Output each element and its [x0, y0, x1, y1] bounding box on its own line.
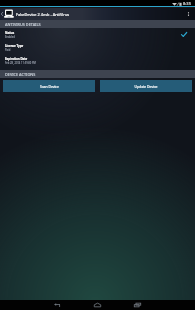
button[interactable]: More options: [184, 8, 192, 20]
button[interactable]: Expiration Date: [0, 54, 195, 67]
staticText: Status: [5, 31, 15, 35]
button[interactable]: Navigate up: [0, 8, 4, 20]
button[interactable]: License Type: [0, 41, 195, 54]
button[interactable]: Back: [45, 300, 69, 310]
button[interactable]: Status: [0, 28, 195, 41]
button[interactable]: Recent apps: [125, 300, 149, 310]
button[interactable]: Scan Device: [3, 80, 95, 92]
staticText: Expiration Date: [5, 57, 28, 61]
staticText: Enabled: [5, 35, 15, 39]
staticText: Paid: [5, 48, 11, 52]
staticText: DEVICE ACTIONS: [5, 72, 36, 77]
staticText: FakeDevice 2 4esb - AntiVirus: [16, 12, 70, 17]
staticText: Scan Device: [40, 84, 59, 89]
staticText: License Type: [5, 44, 24, 48]
button[interactable]: Update Device: [100, 80, 192, 92]
staticText: ANTIVIRUS DETAILS: [5, 22, 41, 27]
staticText: Feb 28, 2014 11:59:00 PM: [5, 61, 36, 65]
staticText: Update Device: [134, 84, 158, 89]
staticText: 8:35: [183, 1, 191, 6]
button[interactable]: Home: [85, 300, 109, 310]
